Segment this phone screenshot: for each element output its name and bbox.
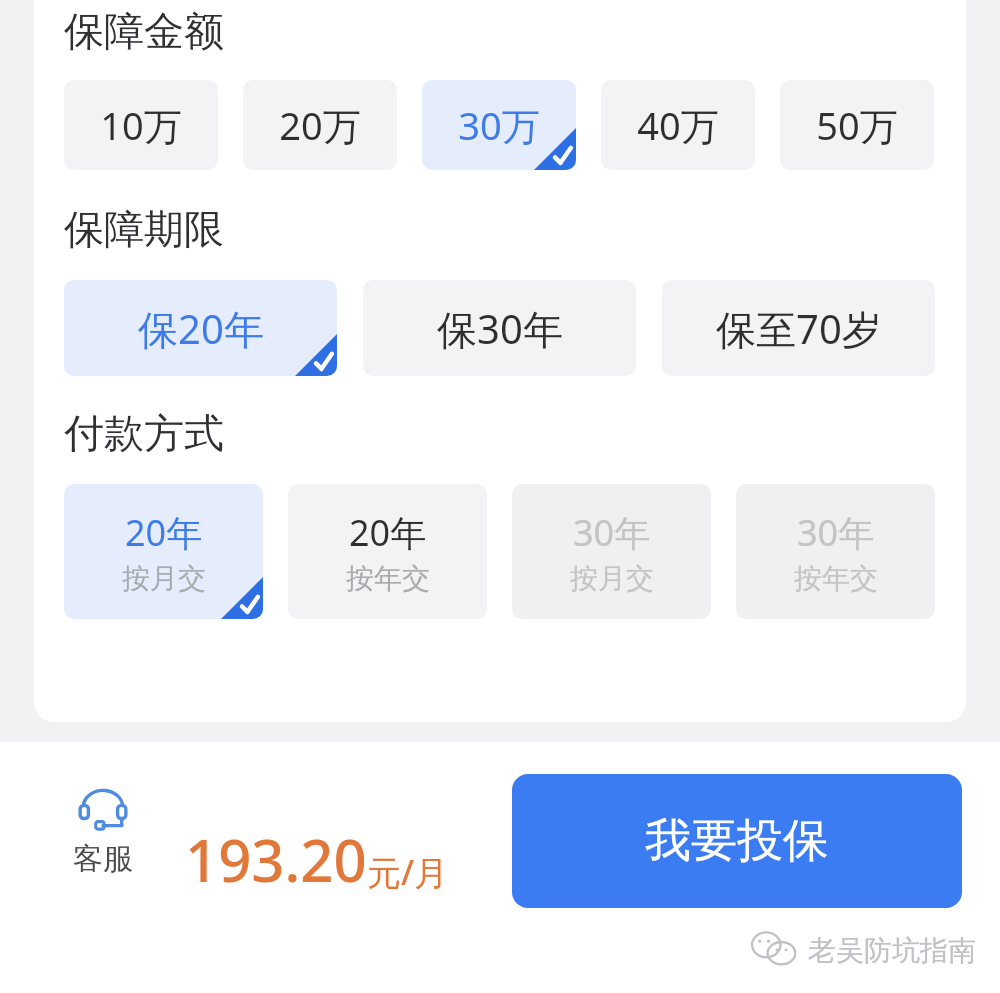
button[interactable]: 20年 — [288, 484, 487, 619]
staticText: 30年 — [573, 508, 651, 557]
staticText: 50万 — [816, 99, 898, 151]
button[interactable]: 30年 — [736, 484, 935, 619]
button[interactable]: 客服 — [60, 786, 146, 878]
button[interactable]: 10万 — [64, 80, 218, 170]
button[interactable]: 保20年 — [64, 280, 337, 376]
button[interactable]: 我要投保 — [512, 774, 962, 908]
button[interactable]: 20年 — [64, 484, 263, 619]
staticText: 30年 — [797, 508, 875, 557]
staticText: 我要投保 — [645, 812, 829, 870]
button[interactable]: 20万 — [243, 80, 397, 170]
button[interactable]: 30万 — [422, 80, 576, 170]
staticText: 按年交 — [794, 561, 878, 596]
staticText: 10万 — [100, 99, 182, 151]
staticText: 保障金额 — [64, 6, 224, 56]
button[interactable]: 保30年 — [363, 280, 636, 376]
staticText: 20年 — [125, 508, 203, 557]
button[interactable]: 50万 — [780, 80, 934, 170]
button[interactable]: 30年 — [512, 484, 711, 619]
staticText: 保障期限 — [64, 204, 224, 254]
staticText: 按月交 — [122, 561, 206, 596]
staticText: 20万 — [279, 99, 361, 151]
button[interactable]: 40万 — [601, 80, 755, 170]
staticText: 客服 — [73, 840, 133, 878]
staticText: 保20年 — [138, 301, 264, 356]
staticText: 30万 — [458, 99, 540, 151]
staticText: 保30年 — [437, 301, 563, 356]
staticText: 40万 — [637, 99, 719, 151]
staticText: 20年 — [349, 508, 427, 557]
staticText: 193.20 — [185, 820, 367, 899]
staticText: 按月交 — [570, 561, 654, 596]
staticText: 保至70岁 — [716, 301, 882, 356]
staticText: 付款方式 — [64, 408, 224, 458]
staticText: 老吴防坑指南 — [808, 933, 976, 968]
staticText: 按年交 — [346, 561, 430, 596]
staticText: 元/月 — [367, 849, 449, 895]
button[interactable]: 保至70岁 — [662, 280, 935, 376]
